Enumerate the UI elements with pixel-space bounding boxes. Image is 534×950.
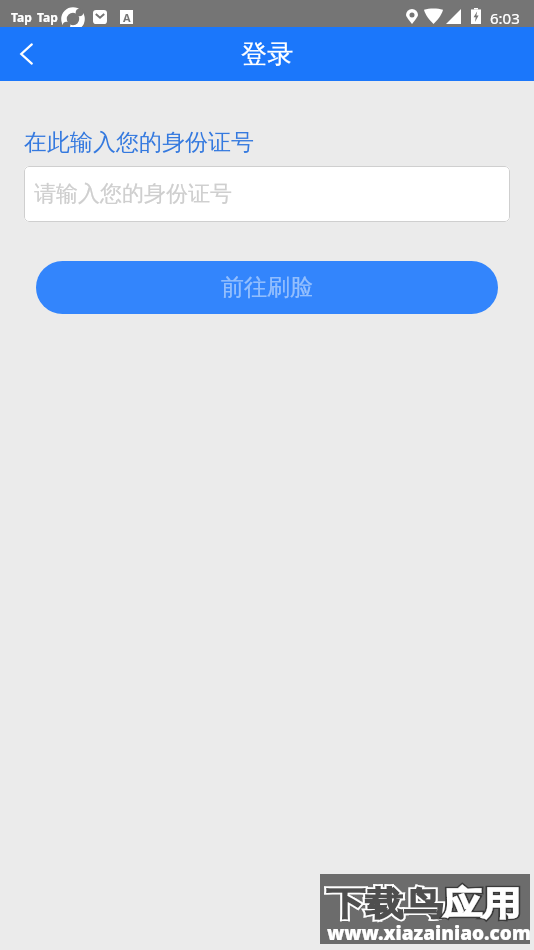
staticText: www.xiazainiao.com (327, 920, 531, 946)
staticText: 请输入您的身份证号 (34, 180, 232, 208)
staticText: 下载鸟 (326, 883, 443, 925)
staticText: Tap (11, 9, 32, 25)
staticText: Tap (37, 9, 58, 25)
button[interactable]: Back (0, 27, 54, 81)
staticText: 6:03 (490, 8, 520, 28)
button[interactable]: 请输入您的身份证号 (24, 166, 510, 222)
staticText: 前往刷脸 (221, 273, 313, 302)
staticText: 在此输入您的身份证号 (24, 128, 254, 157)
staticText: A (123, 10, 131, 24)
button[interactable]: 前往刷脸 (36, 261, 498, 314)
staticText: 登录 (241, 38, 293, 71)
staticText: 应用 (443, 883, 521, 925)
staticText: 下载鸟 (326, 883, 443, 925)
staticText: 应用 (443, 883, 521, 925)
